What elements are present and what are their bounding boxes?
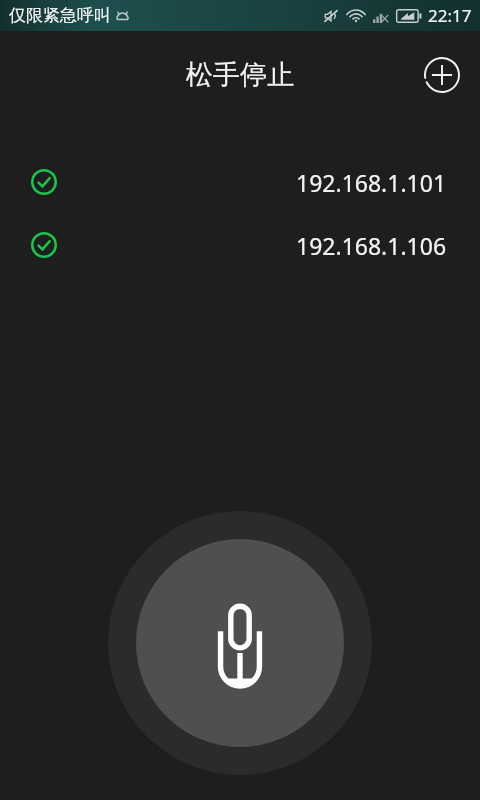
- staticText: 192.168.1.101: [296, 167, 447, 198]
- staticText: 仅限紧急呼叫: [9, 5, 111, 26]
- button[interactable]: Add device: [414, 47, 470, 103]
- button[interactable]: Hold to talk: [108, 511, 372, 775]
- button[interactable]: 192.168.1.101: [0, 164, 480, 200]
- button[interactable]: 192.168.1.106: [0, 227, 480, 263]
- staticText: 22:17: [428, 4, 472, 27]
- staticText: 192.168.1.106: [296, 230, 447, 261]
- staticText: 松手停止: [186, 58, 294, 92]
